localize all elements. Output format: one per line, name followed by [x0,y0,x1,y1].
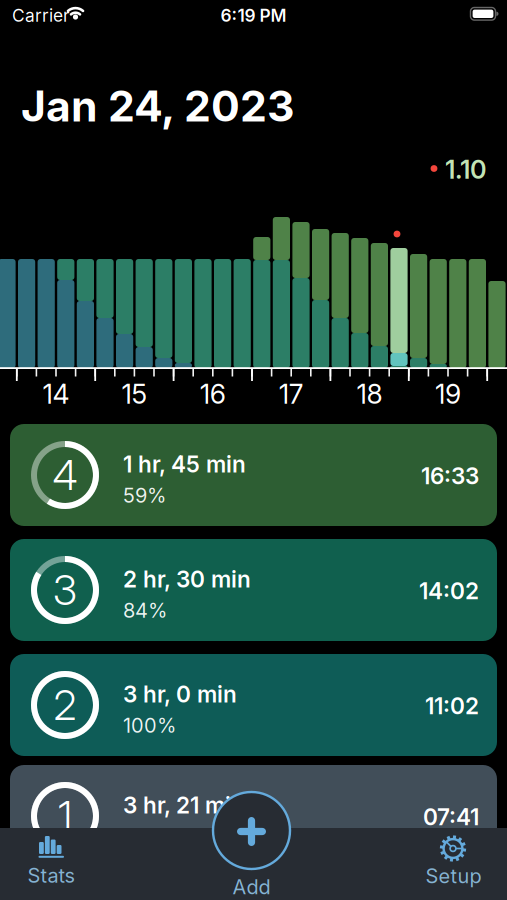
staticText: 11:02 [425,693,479,719]
staticText: 18 [357,378,383,410]
staticText: 3 hr, 0 min [123,681,237,707]
button[interactable]: Stats [1,832,101,890]
staticText: 14 [42,378,69,410]
staticText: 16:33 [421,463,479,489]
staticText: Jan 24, 2023 [21,81,295,131]
button[interactable]: Add [209,790,293,896]
staticText: 14:02 [419,578,479,604]
staticText: 4 [52,451,77,499]
staticText: 07:41 [423,804,479,830]
staticText: 3 hr, 21 min [123,792,245,818]
staticText: Carrier [12,5,70,26]
staticText: 3 [53,566,77,614]
staticText: 16 [200,378,226,410]
staticText: 2 [53,681,76,729]
staticText: 15 [121,378,147,410]
button[interactable]: Setup [403,832,503,890]
staticText: 1 [58,792,72,840]
button[interactable]: 3 [10,539,497,641]
button[interactable]: 1 [10,765,497,867]
staticText: 59% [123,484,166,507]
staticText: 1 hr, 45 min [123,451,246,477]
button[interactable]: 2 [10,654,497,756]
staticText: 1.10 [445,155,487,184]
staticText: 84% [123,599,167,622]
staticText: 17 [279,378,304,410]
staticText: 100% [123,714,176,737]
staticText: 6:19 PM [220,5,286,26]
staticText: 19 [435,378,461,410]
staticText: 2 hr, 30 min [123,566,251,592]
staticText: Add [232,875,270,899]
staticText: Stats [27,864,74,887]
button[interactable]: 4 [10,424,497,526]
staticText: Setup [425,864,481,888]
